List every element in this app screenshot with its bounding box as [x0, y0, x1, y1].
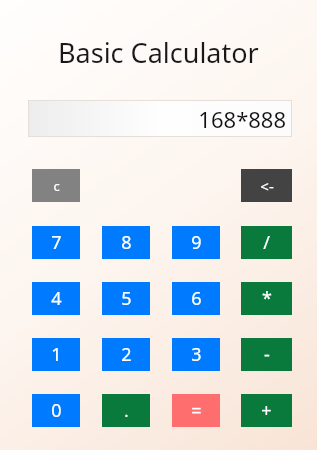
button[interactable]: 9	[172, 226, 220, 259]
staticText: 4	[51, 286, 62, 311]
staticText: 8	[121, 230, 132, 255]
button[interactable]: *	[241, 282, 292, 315]
staticText: -	[264, 342, 270, 367]
button[interactable]: 1	[32, 338, 80, 371]
staticText: Basic Calculator	[58, 34, 259, 71]
staticText: 7	[51, 230, 62, 255]
staticText: .	[124, 400, 129, 422]
button[interactable]: 0	[32, 394, 80, 427]
button[interactable]: 8	[102, 226, 150, 259]
staticText: 168*888	[198, 104, 286, 134]
button[interactable]: +	[241, 394, 292, 427]
staticText: <-	[260, 176, 274, 196]
button[interactable]: .	[102, 394, 150, 427]
button[interactable]: =	[172, 394, 220, 427]
button[interactable]: 6	[172, 282, 220, 315]
staticText: 6	[191, 286, 202, 311]
button[interactable]: 2	[102, 338, 150, 371]
staticText: 9	[191, 230, 202, 255]
button[interactable]: 4	[32, 282, 80, 315]
staticText: 2	[121, 342, 132, 367]
staticText: 3	[191, 342, 202, 367]
staticText: c	[53, 177, 60, 195]
staticText: 1	[51, 342, 62, 367]
staticText: 5	[121, 286, 132, 311]
button[interactable]: 168*888	[28, 100, 292, 137]
staticText: +	[261, 398, 272, 423]
button[interactable]: c	[32, 169, 80, 202]
staticText: /	[263, 230, 270, 255]
staticText: =	[191, 398, 202, 423]
staticText: 0	[51, 398, 62, 423]
button[interactable]: 5	[102, 282, 150, 315]
button[interactable]: Backspace	[241, 169, 292, 202]
staticText: *	[262, 286, 272, 311]
button[interactable]: 3	[172, 338, 220, 371]
button[interactable]: /	[241, 226, 292, 259]
button[interactable]: 7	[32, 226, 80, 259]
button[interactable]: -	[241, 338, 292, 371]
